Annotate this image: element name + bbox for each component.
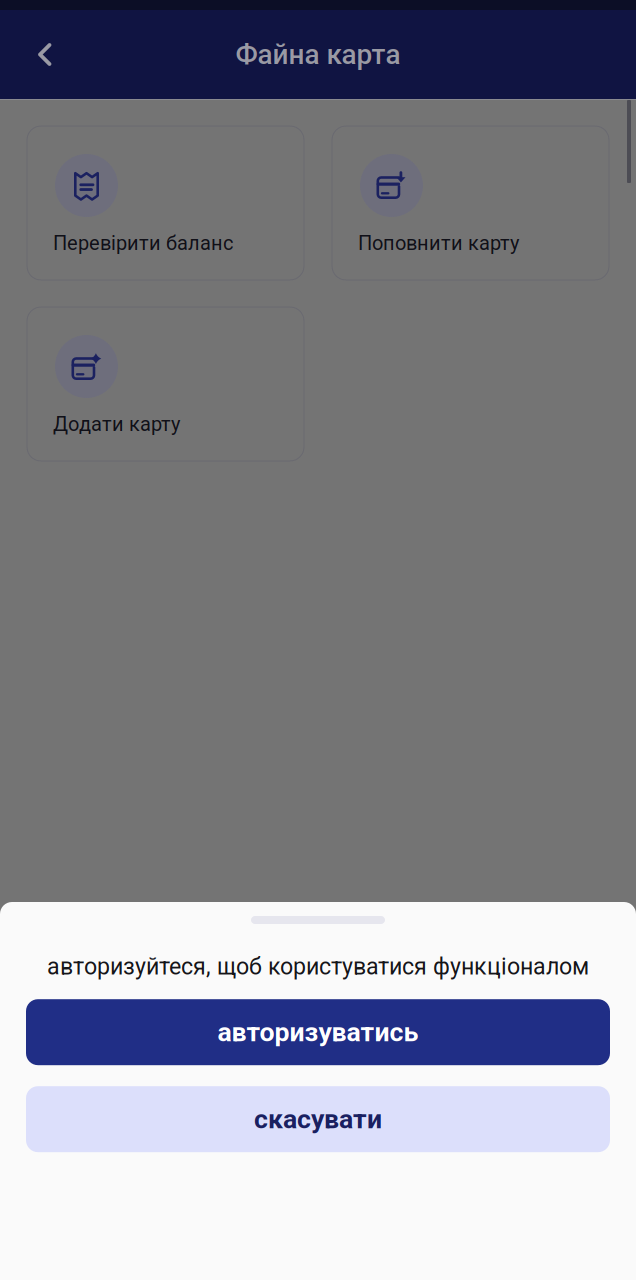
button[interactable]: Додати карту	[27, 307, 304, 461]
staticText: скасувати	[254, 1104, 382, 1135]
button[interactable]: Назад	[0, 26, 73, 82]
staticText: авторизуйтеся, щоб користуватися функціо…	[47, 953, 589, 980]
staticText: Поповнити карту	[358, 232, 519, 255]
staticText: Перевірити баланс	[53, 232, 233, 255]
button[interactable]: Перевірити баланс	[27, 126, 304, 280]
staticText: Файна карта	[235, 38, 400, 71]
button[interactable]: Поповнити карту	[332, 126, 609, 280]
button[interactable]: авторизуватись	[26, 999, 610, 1065]
button[interactable]: скасувати	[26, 1086, 610, 1152]
staticText: авторизуватись	[217, 1017, 418, 1048]
staticText: Додати карту	[53, 413, 180, 436]
